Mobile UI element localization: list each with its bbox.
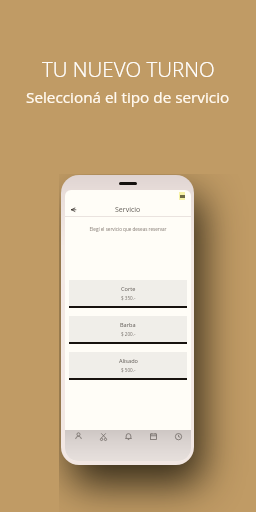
button[interactable]: Barba <box>69 316 187 344</box>
button[interactable]: History <box>166 430 191 461</box>
staticText: Barba <box>120 321 136 329</box>
button[interactable]: Corte <box>69 280 187 308</box>
staticText: Servicio <box>115 205 141 215</box>
staticText: Corte <box>121 285 136 293</box>
staticText: $ 350.- <box>121 295 136 301</box>
button[interactable]: Profile <box>65 430 91 461</box>
staticText: $ 200.- <box>121 331 136 337</box>
button[interactable]: Calendar <box>141 430 166 461</box>
button[interactable]: Alisado <box>69 352 187 380</box>
button[interactable]: Notifications <box>116 430 141 461</box>
staticText: TU NUEVO TURNO <box>42 55 215 83</box>
staticText: Elegí el servicio que deseas reservar <box>65 226 191 232</box>
staticText: Alisado <box>119 357 138 365</box>
staticText: $ 500.- <box>121 367 136 373</box>
staticText: Seleccioná el tipo de servicio <box>26 87 230 108</box>
button[interactable]: Services <box>91 430 116 461</box>
button[interactable]: Back <box>68 204 79 215</box>
